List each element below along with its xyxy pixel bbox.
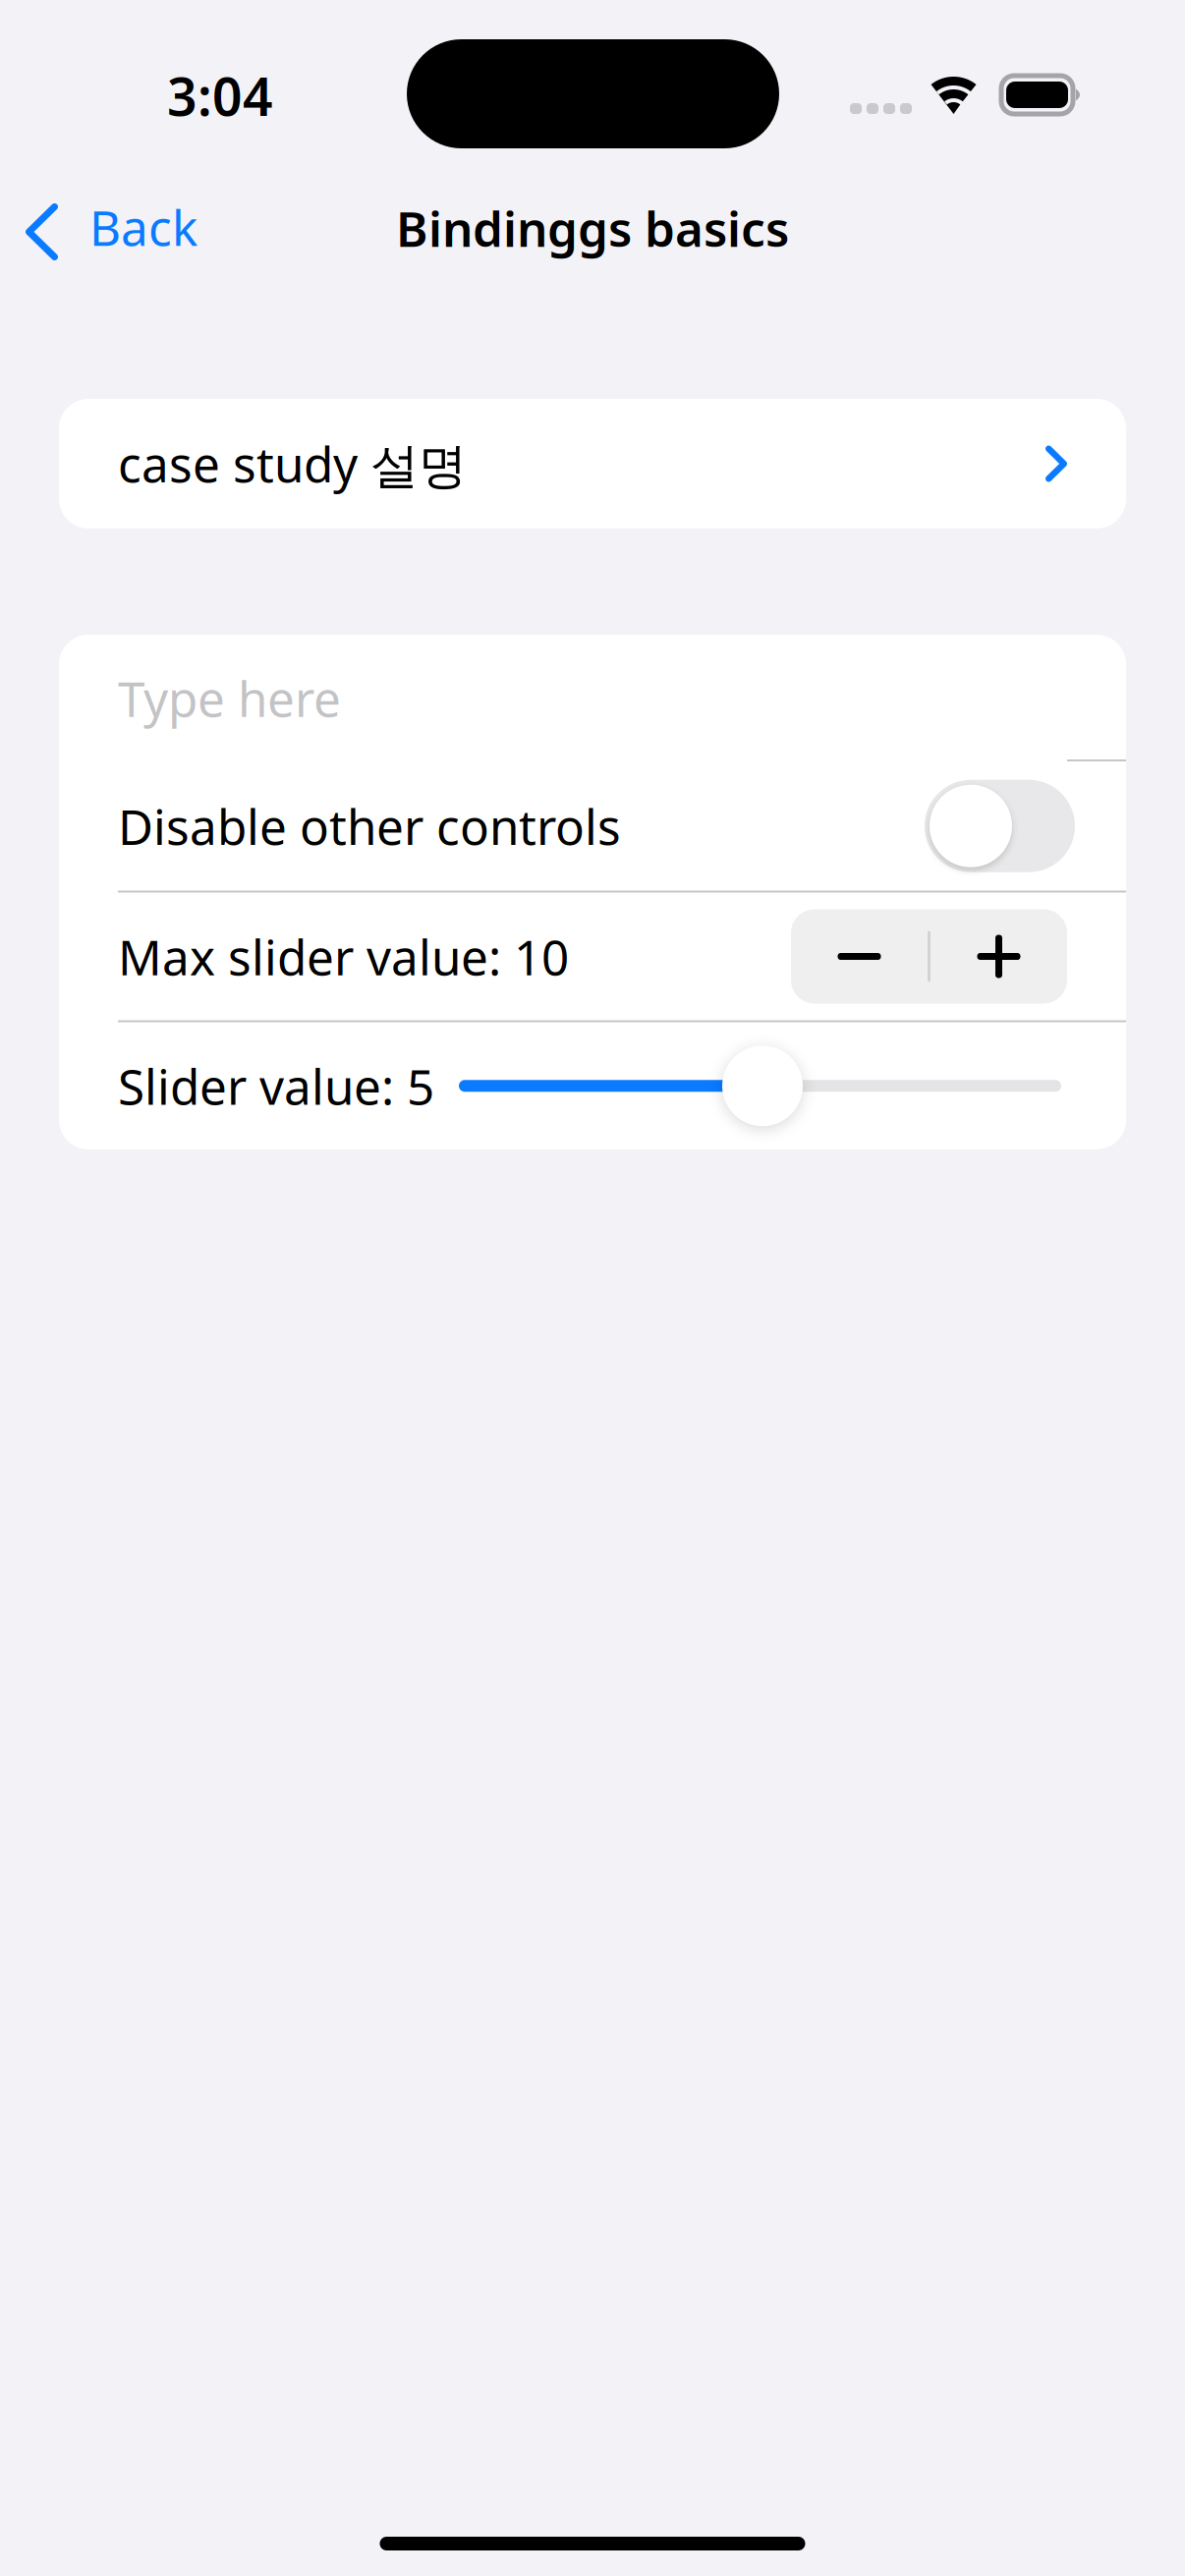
button[interactable]: case study 설명 bbox=[59, 399, 1126, 529]
button[interactable]: Back bbox=[0, 174, 219, 304]
button[interactable]: Decrease max slider value bbox=[791, 909, 928, 1004]
button[interactable]: Disable other controls bbox=[925, 780, 1075, 872]
staticText: Disable other controls bbox=[118, 794, 621, 858]
button[interactable]: Increase max slider value bbox=[931, 909, 1067, 1004]
button[interactable]: Type here bbox=[59, 635, 1126, 761]
staticText: 3:04 bbox=[167, 61, 273, 130]
button[interactable]: Slider value bbox=[459, 1040, 1061, 1132]
staticText: Bindinggs basics bbox=[396, 196, 789, 260]
staticText: case study 설명 bbox=[118, 431, 467, 496]
staticText: Max slider value: 10 bbox=[118, 924, 569, 989]
staticText: Back bbox=[89, 195, 197, 259]
staticText: Slider value: 5 bbox=[118, 1054, 434, 1118]
staticText: Type here bbox=[118, 666, 341, 730]
